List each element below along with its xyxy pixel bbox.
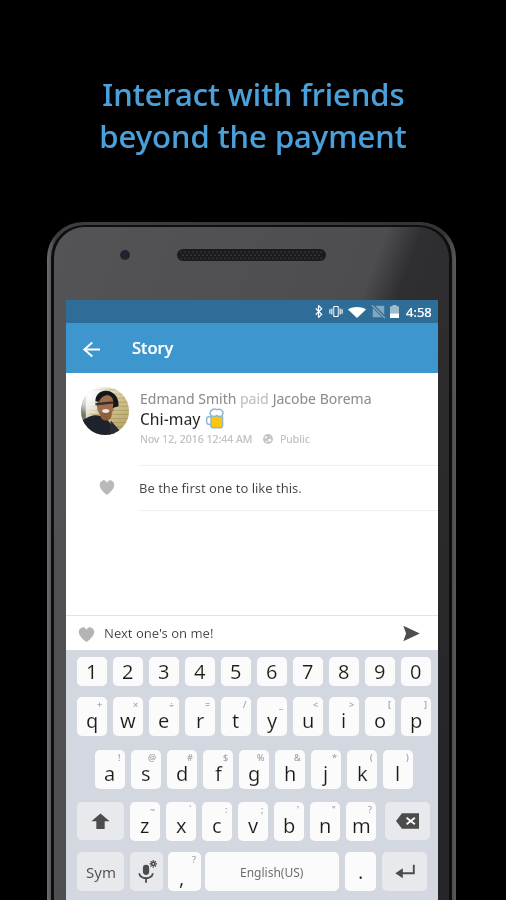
- button[interactable]: English(US): [205, 852, 339, 891]
- staticText: Public: [280, 432, 310, 446]
- button[interactable]: Enter: [382, 852, 427, 891]
- staticText: 4:58: [406, 303, 432, 321]
- staticText: s: [141, 760, 151, 787]
- button[interactable]: ~: [130, 802, 160, 841]
- button[interactable]: <: [293, 697, 323, 736]
- staticText: ': [297, 803, 300, 815]
- staticText: w: [120, 707, 136, 734]
- staticText: g: [248, 760, 261, 787]
- staticText: ~: [150, 803, 156, 815]
- button[interactable]: #: [167, 750, 197, 789]
- button[interactable]: Voice input: [130, 852, 163, 891]
- staticText: n: [319, 812, 332, 839]
- staticText: j: [323, 760, 329, 787]
- button[interactable]: 8: [329, 657, 359, 686]
- staticText: 7: [302, 658, 314, 685]
- staticText: %: [257, 751, 265, 763]
- button[interactable]: (: [347, 750, 377, 789]
- button[interactable]: ': [274, 802, 304, 841]
- staticText: Story: [132, 336, 174, 358]
- button[interactable]: ×: [113, 697, 143, 736]
- button[interactable]: ÷: [149, 697, 179, 736]
- button[interactable]: Be the first one to like this.: [66, 466, 438, 510]
- staticText: 5: [230, 658, 242, 685]
- staticText: *: [332, 751, 337, 763]
- staticText: h: [284, 760, 297, 787]
- staticText: _: [279, 698, 283, 710]
- button[interactable]: %: [239, 750, 269, 789]
- button[interactable]: 3: [149, 657, 179, 686]
- staticText: `: [189, 803, 192, 815]
- staticText: i: [341, 707, 347, 734]
- button[interactable]: 7: [293, 657, 323, 686]
- staticText: [: [388, 698, 391, 710]
- button[interactable]: Backspace: [385, 802, 430, 840]
- button[interactable]: 2: [113, 657, 143, 686]
- button[interactable]: Back: [73, 330, 111, 368]
- staticText: $: [223, 751, 229, 763]
- staticText: v: [248, 812, 259, 839]
- button[interactable]: &: [275, 750, 305, 789]
- button[interactable]: :: [202, 802, 232, 841]
- button[interactable]: ]: [401, 697, 431, 736]
- staticText: +: [97, 698, 103, 710]
- button[interactable]: +: [77, 697, 107, 736]
- staticText: c: [212, 812, 222, 839]
- staticText: (: [370, 751, 373, 763]
- button[interactable]: Shift: [77, 802, 124, 840]
- button[interactable]: `: [166, 802, 196, 841]
- button[interactable]: =: [185, 697, 215, 736]
- button[interactable]: Send: [393, 616, 429, 650]
- staticText: m: [352, 812, 371, 839]
- button[interactable]: 6: [257, 657, 287, 686]
- button[interactable]: Sym: [77, 852, 124, 891]
- staticText: o: [374, 707, 387, 734]
- button[interactable]: @: [131, 750, 161, 789]
- button[interactable]: ?: [168, 852, 201, 891]
- button[interactable]: ;: [238, 802, 268, 841]
- staticText: ): [406, 751, 409, 763]
- staticText: p: [410, 707, 423, 734]
- staticText: b: [283, 812, 296, 839]
- button[interactable]: >: [329, 697, 359, 736]
- staticText: d: [176, 760, 189, 787]
- staticText: :: [225, 803, 228, 815]
- staticText: 9: [374, 658, 386, 685]
- staticText: paid: [240, 389, 269, 408]
- staticText: f: [215, 760, 222, 787]
- staticText: ÷: [169, 698, 175, 710]
- button[interactable]: !: [95, 750, 125, 789]
- button[interactable]: 9: [365, 657, 395, 686]
- staticText: #: [187, 751, 193, 763]
- button[interactable]: ?: [346, 802, 376, 841]
- button[interactable]: 0: [401, 657, 431, 686]
- staticText: <: [313, 698, 319, 710]
- staticText: 3: [158, 658, 170, 685]
- staticText: ,: [179, 864, 185, 891]
- staticText: ?: [192, 853, 196, 865]
- button[interactable]: *: [311, 750, 341, 789]
- staticText: l: [395, 760, 401, 787]
- button[interactable]: ": [310, 802, 340, 841]
- button[interactable]: 5: [221, 657, 251, 686]
- button[interactable]: [: [365, 697, 395, 736]
- staticText: Edmand Smith: [140, 389, 240, 408]
- staticText: ?: [368, 803, 372, 815]
- button[interactable]: 1: [77, 657, 107, 686]
- staticText: Jacobe Borema: [269, 389, 372, 408]
- staticText: =: [205, 698, 211, 710]
- staticText: beyond the payment: [99, 115, 407, 157]
- button[interactable]: _: [257, 697, 287, 736]
- button[interactable]: /: [221, 697, 251, 736]
- button[interactable]: .: [345, 852, 376, 891]
- staticText: t: [232, 707, 240, 734]
- staticText: 0: [410, 658, 422, 685]
- staticText: r: [196, 707, 205, 734]
- staticText: ]: [424, 698, 427, 710]
- button[interactable]: $: [203, 750, 233, 789]
- button[interactable]: ): [383, 750, 413, 789]
- staticText: ×: [133, 698, 139, 710]
- staticText: ;: [261, 803, 264, 815]
- button[interactable]: 4: [185, 657, 215, 686]
- staticText: !: [118, 751, 121, 763]
